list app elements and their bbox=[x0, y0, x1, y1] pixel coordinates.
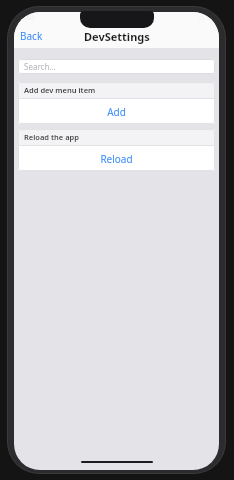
button[interactable]: Add bbox=[18, 99, 215, 124]
staticText: Reload bbox=[100, 152, 133, 166]
staticText: Add dev menu item bbox=[24, 85, 96, 95]
staticText: Add bbox=[107, 105, 126, 119]
staticText: Search... bbox=[24, 61, 56, 72]
staticText: 6:50 bbox=[21, 13, 35, 23]
staticText: Back bbox=[20, 29, 43, 43]
staticText: Reload the app bbox=[24, 132, 79, 142]
button[interactable]: Back bbox=[14, 24, 49, 48]
button[interactable]: Reload bbox=[18, 146, 215, 171]
button[interactable]: Search... bbox=[18, 59, 215, 74]
staticText: DevSettings bbox=[84, 29, 150, 44]
